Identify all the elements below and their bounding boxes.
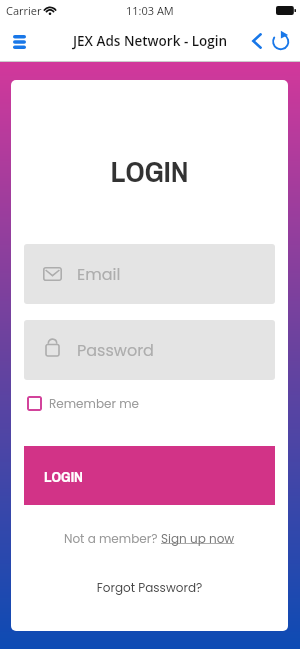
- button[interactable]: Password: [24, 320, 275, 380]
- staticText: Email: [77, 263, 121, 285]
- button[interactable]: Email: [24, 244, 275, 304]
- staticText: LOGIN: [11, 151, 288, 191]
- staticText: Carrier: [6, 3, 42, 18]
- staticText: Password: [77, 339, 154, 361]
- staticText: Remember me: [49, 395, 139, 412]
- button[interactable]: Refresh: [265, 27, 295, 57]
- button[interactable]: Forgot Password?: [11, 579, 288, 596]
- button[interactable]: LOGIN: [24, 446, 275, 505]
- button[interactable]: Sign up now: [161, 530, 235, 547]
- button[interactable]: Back: [241, 30, 265, 54]
- staticText: JEX Ads Network - Login: [73, 32, 228, 50]
- staticText: 11:03 AM: [126, 3, 174, 18]
- button[interactable]: Menu: [1, 24, 37, 60]
- staticText: Not a member?: [64, 530, 161, 547]
- staticText: LOGIN: [44, 466, 83, 486]
- button[interactable]: Remember me: [27, 390, 139, 417]
